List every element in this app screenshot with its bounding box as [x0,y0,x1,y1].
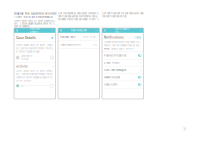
staticText: Notifications [115,27,130,33]
staticText: Weekly Digest [104,76,120,79]
staticText: device. You can change these at any time… [104,44,141,47]
staticText: Manager [21,58,29,60]
button[interactable]: Attachment [50,56,54,59]
staticText: Set the essential and latest reviews nun… [58,12,99,15]
staticText: Email Alerts [104,61,119,64]
staticText: New Request [71,29,87,32]
staticText: Request Type [60,35,75,39]
staticText: labore et dolore magna aliqua ut enim ad [16,76,54,79]
staticText: elit sed do eiusmod tempor incididunt ut… [16,47,54,50]
staticText: Choose which alerts you want to receive … [104,41,141,44]
staticText: the notifications on the. [102,15,127,18]
staticText: Case Description [60,43,80,46]
staticText: Note: [104,47,110,50]
button[interactable]: Back [60,29,63,32]
button[interactable]: Status [51,37,54,39]
staticText: Set notifications for any case alert and [102,12,143,15]
staticText: Users' stories and Recommendation [15,16,52,19]
button[interactable]: Push Notifications [102,52,143,59]
staticText: updates apply instantly. [111,47,135,50]
staticText: Push Notifications [104,54,126,57]
staticText: Lorem ipsum dolor sit amet consectetur a… [14,19,55,22]
button[interactable]: Back [16,29,19,32]
staticText: Enter [93,43,98,46]
staticText: minim veniam. [16,79,32,82]
staticText: Case Details [16,36,36,40]
staticText: 14 [183,127,186,131]
staticText: Notifications [104,36,124,39]
staticText: et dolore magna aliqua. [16,50,40,53]
staticText: notifications across the monthly nulla [58,15,97,18]
button[interactable]: More [51,29,54,32]
staticText: sem ut sodales. [14,25,30,28]
staticText: Lorem ipsum dolor sit amet, consectetur … [16,44,54,46]
staticText: Display the updated records [14,12,55,15]
staticText: Select an option [83,36,98,38]
staticText: Cancel [134,36,141,39]
staticText: Lorem ipsum dolor sit amet consectetur a… [16,70,54,72]
staticText: Request Details [30,27,40,33]
staticText: Case Alerts [104,83,117,86]
staticText: Activity [16,65,28,68]
button[interactable]: More [139,29,142,32]
button[interactable]: Case Description [58,41,99,48]
staticText: elit. Cursus updating purus dolor sit se… [14,22,55,25]
button[interactable]: Request Type [58,33,99,41]
staticText: elit, sed do eiusmod tempor incididunt u… [16,73,54,76]
button[interactable]: SMS Text Messages [102,67,143,73]
button[interactable]: Case Alerts [102,81,143,88]
button[interactable]: More [95,29,98,32]
button[interactable]: Email Alerts [102,59,143,66]
button[interactable]: Weekly Digest [102,74,143,81]
staticText: John Smith [21,55,32,57]
button[interactable]: Back [104,29,107,32]
staticText: SMS Text Messages [104,68,126,72]
staticText: window forms that be found. Profit Taxes [58,18,99,21]
button[interactable]: Cancel [134,36,141,39]
